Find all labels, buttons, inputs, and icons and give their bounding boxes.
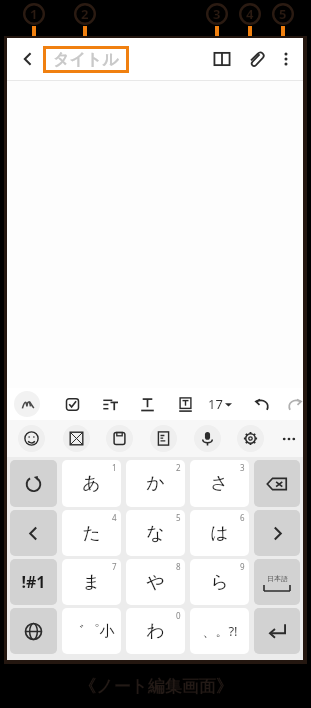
button[interactable]: ら bbox=[190, 559, 249, 605]
staticText: ゛゜小 bbox=[69, 622, 115, 641]
button[interactable]: 日本語スペース bbox=[254, 559, 300, 605]
button[interactable]: 顔文字 bbox=[61, 420, 91, 457]
button[interactable]: やり直し bbox=[10, 460, 57, 507]
staticText: 2 bbox=[176, 462, 181, 473]
button[interactable]: 絵文字 bbox=[16, 420, 46, 457]
button[interactable]: 、。?! bbox=[190, 608, 249, 654]
staticText: ま bbox=[82, 571, 101, 594]
button[interactable]: は bbox=[190, 510, 249, 556]
staticText: 17 bbox=[208, 395, 223, 413]
staticText: は bbox=[210, 522, 229, 545]
staticText: 6 bbox=[240, 512, 245, 523]
staticText: な bbox=[146, 522, 165, 545]
button[interactable]: !#1 bbox=[10, 559, 57, 605]
button[interactable]: 段落 bbox=[95, 388, 125, 420]
button[interactable]: ま bbox=[62, 559, 121, 605]
button[interactable]: 言語切替 bbox=[10, 608, 57, 654]
button[interactable]: その他 bbox=[274, 420, 304, 457]
button[interactable]: その他 bbox=[273, 46, 299, 72]
button[interactable]: 戻る bbox=[13, 44, 43, 74]
button[interactable]: た bbox=[62, 510, 121, 556]
staticText: 0 bbox=[176, 610, 181, 621]
staticText: わ bbox=[146, 620, 165, 643]
button[interactable]: あ bbox=[62, 460, 121, 507]
button[interactable]: テキスト書式 bbox=[132, 388, 162, 420]
button[interactable]: ブック表示 bbox=[207, 44, 237, 74]
staticText: 9 bbox=[240, 561, 245, 572]
staticText: 5 bbox=[279, 5, 287, 23]
button[interactable]: テキストボックス bbox=[170, 388, 200, 420]
button[interactable]: さ bbox=[190, 460, 249, 507]
button[interactable]: 削除 bbox=[254, 460, 300, 507]
staticText: 8 bbox=[176, 561, 181, 572]
button[interactable]: 改行 bbox=[254, 608, 300, 654]
staticText: 1 bbox=[112, 462, 117, 473]
button[interactable]: チェックリスト bbox=[57, 388, 87, 420]
staticText: 3 bbox=[213, 5, 221, 23]
staticText: タイトル bbox=[53, 50, 119, 70]
staticText: 5 bbox=[176, 512, 181, 523]
staticText: 、。?! bbox=[202, 622, 238, 640]
button[interactable]: 右 bbox=[254, 510, 300, 556]
button[interactable]: 定型文 bbox=[148, 420, 178, 457]
button[interactable]: な bbox=[126, 510, 185, 556]
button[interactable]: 手書き bbox=[12, 388, 42, 420]
staticText: 2 bbox=[81, 5, 89, 23]
button[interactable]: 元に戻す bbox=[247, 388, 277, 420]
button[interactable]: 左 bbox=[10, 510, 57, 556]
staticText: ら bbox=[210, 571, 229, 594]
staticText: 4 bbox=[246, 5, 254, 23]
staticText: や bbox=[146, 571, 165, 594]
button[interactable]: 17 bbox=[201, 388, 239, 420]
button[interactable]: 音声入力 bbox=[192, 420, 222, 457]
button[interactable]: ゛゜小 bbox=[62, 608, 121, 654]
button[interactable]: 添付 bbox=[241, 44, 271, 74]
staticText: 《ノート編集画面》 bbox=[79, 676, 233, 697]
staticText: 4 bbox=[112, 512, 117, 523]
staticText: あ bbox=[82, 472, 101, 495]
button[interactable]: やり直す bbox=[279, 388, 309, 420]
staticText: 7 bbox=[112, 561, 117, 572]
staticText: 日本語 bbox=[267, 574, 288, 583]
staticText: !#1 bbox=[21, 571, 46, 593]
button[interactable]: や bbox=[126, 559, 185, 605]
button[interactable]: クリップボード bbox=[104, 420, 134, 457]
button[interactable]: か bbox=[126, 460, 185, 507]
button[interactable]: タイトル bbox=[43, 46, 129, 73]
staticText: さ bbox=[210, 472, 229, 495]
button[interactable]: わ bbox=[126, 608, 185, 654]
staticText: 1 bbox=[30, 5, 38, 23]
staticText: た bbox=[82, 522, 101, 545]
button[interactable]: 設定 bbox=[235, 420, 265, 457]
staticText: 3 bbox=[240, 462, 245, 473]
staticText: か bbox=[146, 472, 165, 495]
